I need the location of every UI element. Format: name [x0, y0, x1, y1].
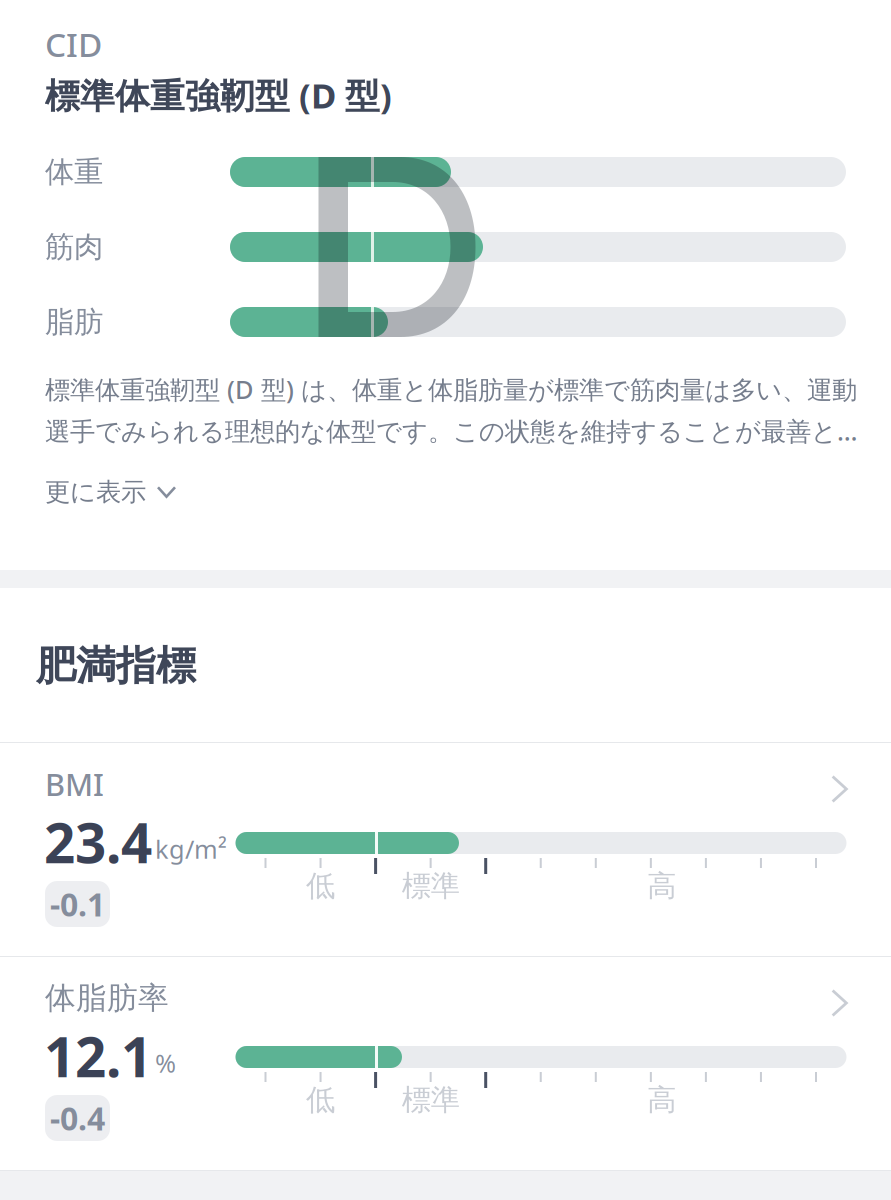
- staticText: %: [155, 1046, 176, 1080]
- staticText: 選手でみられる理想的な体型です。この状態を維持することが最善と…: [45, 414, 858, 448]
- staticText: 更に表示: [45, 476, 146, 507]
- staticText: 低: [306, 868, 335, 904]
- button[interactable]: 更に表示: [45, 476, 225, 507]
- staticText: 筋肉: [45, 229, 103, 265]
- staticText: 標準: [402, 1082, 460, 1118]
- staticText: CID: [45, 22, 102, 66]
- staticText: 体脂肪率: [45, 979, 169, 1017]
- staticText: 肥満指標: [36, 641, 196, 690]
- staticText: 体重: [45, 154, 103, 190]
- staticText: 標準体重強靭型 (D 型): [45, 72, 392, 118]
- staticText: kg/m²: [155, 832, 227, 866]
- staticText: 脂肪: [45, 304, 103, 340]
- staticText: 12.1: [44, 1020, 152, 1092]
- staticText: 低: [306, 1082, 335, 1118]
- button[interactable]: BMI: [0, 743, 891, 956]
- staticText: 高: [647, 1082, 676, 1118]
- staticText: 高: [647, 868, 676, 904]
- button[interactable]: 体脂肪率: [0, 957, 891, 1170]
- staticText: 標準体重強靭型 (D 型) は、体重と体脂肪量が標準で筋肉量は多い、運動: [45, 372, 857, 406]
- staticText: 標準: [402, 868, 460, 904]
- staticText: -0.1: [50, 883, 105, 925]
- staticText: -0.4: [50, 1097, 105, 1139]
- staticText: 23.4: [44, 806, 152, 878]
- staticText: BMI: [45, 764, 104, 804]
